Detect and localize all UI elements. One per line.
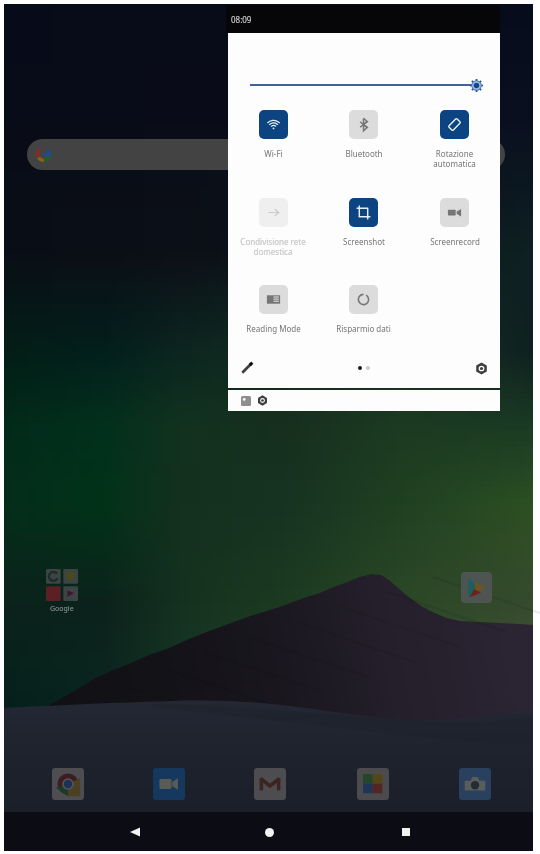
button[interactable]: Search <box>27 139 505 170</box>
button[interactable]: Wi-Fi <box>228 110 318 159</box>
button[interactable]: Google <box>46 569 78 614</box>
staticText: Bluetooth <box>345 148 383 159</box>
staticText: Reading Mode <box>246 323 301 334</box>
button[interactable]: Play Store <box>461 572 492 603</box>
button[interactable]: Screenshot <box>241 396 251 406</box>
button[interactable]: Condivisione rete domestica <box>228 198 318 257</box>
button[interactable]: Camera <box>459 768 491 800</box>
staticText: Risparmio dati <box>336 323 391 334</box>
button[interactable]: Back <box>120 817 150 847</box>
button[interactable]: Brightness <box>470 79 483 92</box>
button[interactable]: Edit <box>240 361 254 375</box>
button[interactable]: Home <box>254 817 284 847</box>
button[interactable]: Gmail <box>254 768 286 800</box>
staticText: Wi-Fi <box>264 148 283 159</box>
button[interactable]: Recents <box>391 817 421 847</box>
staticText: Google <box>50 604 74 614</box>
staticText: 08:09 <box>231 14 252 25</box>
button[interactable]: Risparmio dati <box>318 285 409 334</box>
button[interactable]: Screenshot <box>318 198 409 247</box>
staticText: Screenrecord <box>430 236 480 247</box>
staticText: Screenshot <box>343 236 385 247</box>
button[interactable]: Bluetooth <box>318 110 409 159</box>
button[interactable]: Photos <box>357 768 389 800</box>
staticText: Condivisione rete domestica <box>240 236 306 257</box>
button[interactable]: Screenrecord <box>409 198 500 247</box>
button[interactable]: Settings <box>475 362 488 375</box>
button[interactable]: Reading Mode <box>228 285 318 334</box>
button[interactable]: Rotazione automatica <box>409 110 500 169</box>
button[interactable]: Settings <box>257 395 268 406</box>
button[interactable]: Chrome <box>52 768 84 800</box>
staticText: Rotazione automatica <box>433 148 476 169</box>
button[interactable]: Duo <box>153 768 185 800</box>
